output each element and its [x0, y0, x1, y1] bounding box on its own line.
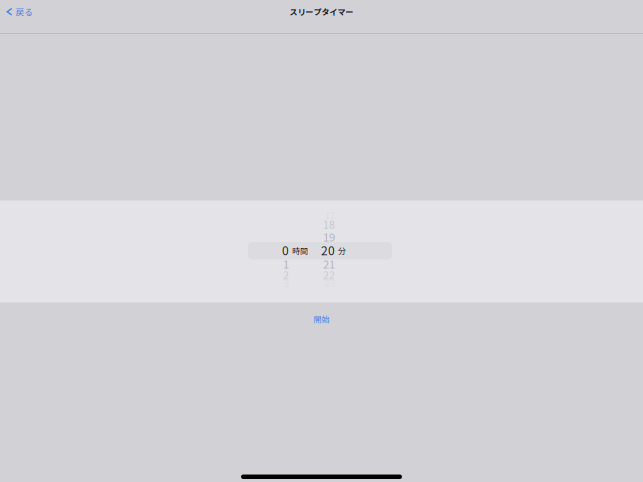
button[interactable]: 戻る	[0, 0, 41, 23]
staticText: 19	[323, 228, 335, 245]
staticText: 20	[321, 241, 335, 259]
staticText: 23	[325, 276, 335, 290]
staticText: 3	[284, 276, 289, 290]
staticText: 時間	[292, 245, 308, 256]
staticText: 18	[323, 216, 335, 232]
staticText: 戻る	[15, 5, 33, 18]
staticText: 21	[323, 255, 335, 272]
staticText: 1	[283, 255, 289, 272]
staticText: 2	[283, 267, 289, 282]
staticText: 17	[325, 208, 335, 222]
staticText: 0	[282, 241, 289, 259]
staticText: 分	[338, 245, 346, 256]
staticText: 22	[323, 267, 335, 282]
staticText: 開始	[313, 313, 329, 325]
button[interactable]: 開始	[304, 310, 338, 328]
staticText: スリープタイマー	[289, 6, 353, 18]
